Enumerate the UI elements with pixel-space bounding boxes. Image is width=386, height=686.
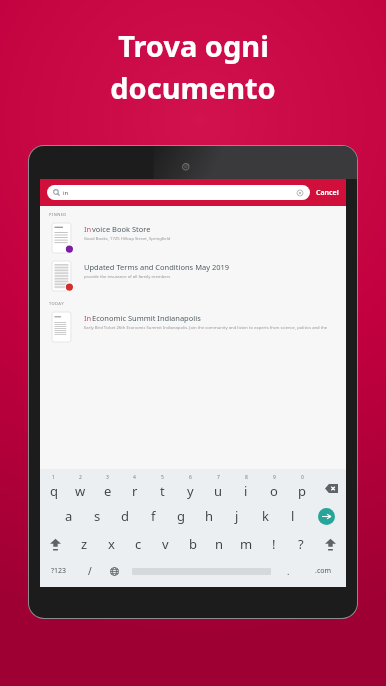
staticText: Good Books, 1725 Hillcap Street, Springf… xyxy=(84,236,171,242)
button[interactable]: ! xyxy=(260,530,287,558)
button[interactable]: h xyxy=(195,502,223,530)
staticText: u xyxy=(214,482,223,500)
staticText: in xyxy=(63,189,69,197)
button[interactable]: 1 xyxy=(40,471,67,502)
button[interactable]: 8 xyxy=(232,471,260,502)
staticText: 7 xyxy=(217,474,220,481)
staticText: b xyxy=(189,535,197,553)
staticText: f xyxy=(151,507,156,525)
staticText: g xyxy=(177,507,185,525)
staticText: / xyxy=(88,564,92,578)
button[interactable]: 7 xyxy=(204,471,232,502)
button[interactable]: . xyxy=(276,558,301,584)
staticText: TODAY xyxy=(49,301,64,306)
staticText: n xyxy=(215,535,224,553)
staticText: In xyxy=(84,224,92,234)
button[interactable] xyxy=(127,558,276,584)
staticText: m xyxy=(240,535,253,553)
staticText: . xyxy=(287,565,290,577)
staticText: v xyxy=(162,535,169,553)
staticText: w xyxy=(75,482,86,500)
staticText: Trova ogni xyxy=(118,26,269,65)
staticText: 3 xyxy=(106,474,109,481)
button[interactable]: ? xyxy=(287,530,314,558)
staticText: 4 xyxy=(133,474,136,481)
staticText: voice Book Store xyxy=(92,224,151,234)
button[interactable]: ?123 xyxy=(40,558,77,584)
staticText: Economic Summit Indianapolis xyxy=(92,313,201,323)
staticText: 6 xyxy=(189,474,192,481)
staticText: l xyxy=(291,507,295,525)
button[interactable]: g xyxy=(167,502,195,530)
staticText: 5 xyxy=(161,474,164,481)
staticText: e xyxy=(104,482,112,500)
staticText: j xyxy=(235,507,239,525)
button[interactable]: z xyxy=(71,530,98,558)
staticText: h xyxy=(205,507,214,525)
staticText: c xyxy=(135,535,142,553)
staticText: x xyxy=(108,535,115,553)
button[interactable]: Cancel xyxy=(316,188,339,198)
button[interactable]: in xyxy=(47,185,310,200)
button[interactable]: Change language xyxy=(102,558,127,584)
button[interactable]: j xyxy=(223,502,251,530)
staticText: ! xyxy=(272,535,276,553)
button[interactable]: 9 xyxy=(260,471,288,502)
button[interactable]: Clear search xyxy=(296,189,304,197)
staticText: ?123 xyxy=(51,566,67,576)
button[interactable]: .com xyxy=(301,558,346,584)
button[interactable]: Shift xyxy=(40,530,71,558)
button[interactable]: 5 xyxy=(148,471,176,502)
staticText: 1 xyxy=(52,474,55,481)
button[interactable]: m xyxy=(233,530,260,558)
button[interactable]: 3 xyxy=(94,471,121,502)
button[interactable]: 4 xyxy=(121,471,148,502)
staticText: y xyxy=(187,482,194,500)
button[interactable]: n xyxy=(206,530,233,558)
staticText: s xyxy=(94,507,101,525)
staticText: provide the insurance of all family memb… xyxy=(84,274,171,280)
staticText: z xyxy=(81,535,88,553)
staticText: 0 xyxy=(301,474,304,481)
button[interactable]: c xyxy=(125,530,152,558)
staticText: p xyxy=(298,482,306,500)
staticText: 8 xyxy=(245,474,248,481)
button[interactable]: d xyxy=(111,502,139,530)
staticText: a xyxy=(65,507,73,525)
button[interactable]: f xyxy=(139,502,167,530)
button[interactable]: b xyxy=(179,530,206,558)
staticText: Updated Terms and Conditions May 2019 xyxy=(84,262,230,272)
button[interactable]: / xyxy=(77,558,102,584)
button[interactable]: v xyxy=(152,530,179,558)
button[interactable]: Updated Terms and Conditions May 2019 xyxy=(40,257,346,295)
button[interactable]: In xyxy=(40,308,346,346)
staticText: In xyxy=(84,313,92,323)
button[interactable]: Shift xyxy=(314,530,346,558)
staticText: i xyxy=(244,482,248,500)
staticText: documento xyxy=(110,68,276,107)
button[interactable]: k xyxy=(251,502,279,530)
button[interactable]: x xyxy=(98,530,125,558)
staticText: ? xyxy=(298,535,304,553)
staticText: r xyxy=(132,482,138,500)
button[interactable]: Backspace xyxy=(316,471,346,502)
staticText: Early Bird Ticket 26th Economic Summit I… xyxy=(84,325,338,331)
staticText: d xyxy=(121,507,129,525)
staticText: Cancel xyxy=(316,188,339,198)
button[interactable]: Enter xyxy=(307,502,346,530)
button[interactable]: l xyxy=(279,502,307,530)
button[interactable]: s xyxy=(83,502,111,530)
staticText: o xyxy=(270,482,278,500)
staticText: .com xyxy=(315,566,332,576)
staticText: q xyxy=(50,482,58,500)
button[interactable]: a xyxy=(55,502,83,530)
staticText: 2 xyxy=(79,474,82,481)
button[interactable]: In xyxy=(40,219,346,257)
button[interactable]: 6 xyxy=(176,471,204,502)
staticText: t xyxy=(160,482,165,500)
staticText: PINNED xyxy=(49,212,67,217)
staticText: k xyxy=(262,507,269,525)
button[interactable]: 2 xyxy=(67,471,94,502)
staticText: 9 xyxy=(273,474,276,481)
button[interactable]: 0 xyxy=(288,471,316,502)
